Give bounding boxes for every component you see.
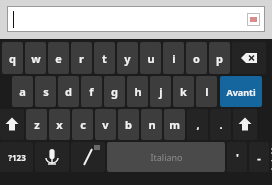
staticText: .: [219, 117, 223, 132]
button[interactable]: -: [249, 142, 269, 172]
button[interactable]: Shift: [233, 109, 257, 140]
staticText: g: [111, 84, 118, 99]
staticText: m: [169, 117, 180, 132]
staticText: -: [257, 150, 261, 165]
button[interactable]: p: [209, 42, 230, 74]
button[interactable]: Slash: [71, 142, 105, 172]
button[interactable]: Voice input: [35, 142, 69, 172]
button[interactable]: r: [71, 42, 92, 74]
button[interactable]: k: [173, 76, 194, 107]
button[interactable]: Shift: [0, 109, 24, 140]
button[interactable]: c: [72, 109, 93, 140]
button[interactable]: .: [210, 109, 231, 140]
button[interactable]: Backspace: [232, 42, 266, 74]
staticText: ': [236, 150, 239, 165]
button[interactable]: g: [104, 76, 125, 107]
button[interactable]: o: [186, 42, 207, 74]
staticText: h: [134, 84, 142, 99]
button[interactable]: a: [12, 76, 33, 107]
staticText: d: [65, 84, 72, 99]
button[interactable]: d: [58, 76, 79, 107]
button[interactable]: l: [196, 76, 217, 107]
button[interactable]: b: [118, 109, 139, 140]
button[interactable]: t: [94, 42, 115, 74]
staticText: s: [43, 84, 49, 99]
staticText: c: [80, 117, 86, 132]
button[interactable]: ,: [187, 109, 208, 140]
staticText: z: [34, 117, 40, 132]
button[interactable]: :): [271, 142, 272, 172]
button[interactable]: Avanti: [220, 76, 262, 107]
staticText: :): [271, 143, 272, 171]
button[interactable]: e: [48, 42, 69, 74]
staticText: e: [55, 51, 62, 66]
staticText: q: [9, 51, 16, 66]
staticText: u: [147, 51, 155, 66]
staticText: x: [56, 117, 63, 132]
staticText: n: [148, 117, 156, 132]
staticText: v: [102, 117, 109, 132]
staticText: i: [172, 51, 176, 66]
button[interactable]: x: [49, 109, 70, 140]
staticText: w: [31, 51, 41, 66]
button[interactable]: f: [81, 76, 102, 107]
staticText: r: [79, 51, 84, 66]
staticText: ,: [196, 117, 200, 132]
button[interactable]: z: [26, 109, 47, 140]
button[interactable]: j: [150, 76, 171, 107]
button[interactable]: m: [164, 109, 185, 140]
staticText: Avanti: [226, 86, 256, 98]
button[interactable]: n: [141, 109, 162, 140]
staticText: k: [180, 84, 187, 99]
staticText: l: [205, 84, 209, 99]
staticText: Italiano: [150, 151, 183, 163]
button[interactable]: Italiano: [107, 142, 225, 172]
button[interactable]: s: [35, 76, 56, 107]
staticText: y: [124, 51, 131, 66]
button[interactable]: v: [95, 109, 116, 140]
button[interactable]: Input method: [248, 14, 259, 25]
staticText: o: [193, 51, 200, 66]
staticText: b: [125, 117, 132, 132]
button[interactable]: i: [163, 42, 184, 74]
button[interactable]: Input method: [8, 7, 264, 31]
staticText: f: [89, 84, 94, 99]
button[interactable]: q: [2, 42, 23, 74]
button[interactable]: w: [25, 42, 46, 74]
button[interactable]: ': [227, 142, 247, 172]
staticText: ?123: [8, 152, 26, 163]
button[interactable]: ?123: [0, 142, 33, 172]
button[interactable]: h: [127, 76, 148, 107]
button[interactable]: y: [117, 42, 138, 74]
staticText: a: [19, 84, 26, 99]
button[interactable]: u: [140, 42, 161, 74]
staticText: t: [102, 51, 107, 66]
staticText: p: [216, 51, 223, 66]
staticText: j: [159, 84, 163, 99]
